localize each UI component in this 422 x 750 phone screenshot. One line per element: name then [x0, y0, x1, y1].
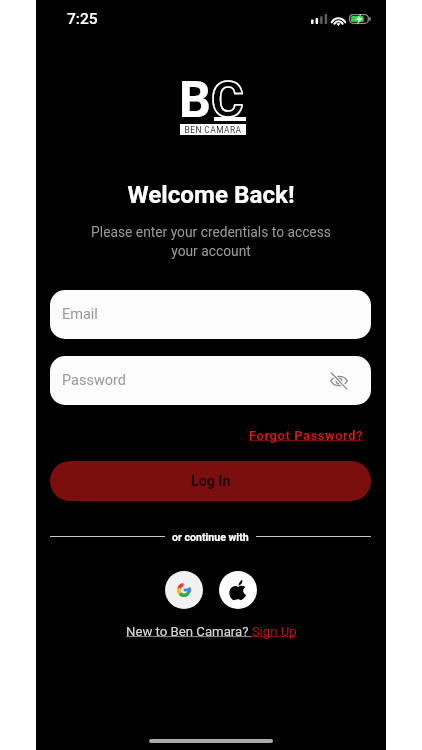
button[interactable]: Password — [50, 356, 371, 405]
staticText: Welcome Back! — [36, 181, 386, 209]
staticText: 7:25 — [67, 10, 98, 28]
staticText: Email — [62, 306, 98, 323]
button[interactable]: Log In — [50, 461, 371, 501]
staticText: Password — [62, 372, 127, 389]
button[interactable]: Toggle password visibility — [328, 370, 350, 392]
button[interactable]: New to Ben Camara? Sign Up — [122, 621, 301, 642]
staticText: Please enter your credentials to access … — [80, 224, 342, 259]
staticText: B — [179, 71, 211, 130]
button[interactable]: Forgot Password? — [247, 425, 366, 446]
staticText: C — [211, 71, 244, 130]
staticText: or continue with — [172, 531, 249, 543]
button[interactable]: Sign in with Google — [165, 571, 203, 609]
button[interactable]: Email — [50, 290, 371, 339]
button[interactable]: Sign in with Apple — [219, 571, 257, 609]
staticText: BEN CAMARA — [184, 125, 242, 135]
staticText: Log In — [191, 473, 231, 490]
